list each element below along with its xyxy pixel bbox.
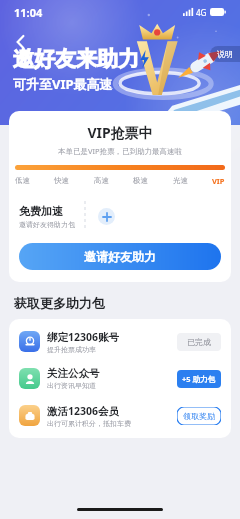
staticText: 获取更多助力包 — [14, 295, 105, 311]
button[interactable]: Back — [8, 29, 34, 55]
staticText: 已完成 — [187, 337, 211, 347]
staticText: VIP抢票中 — [9, 123, 231, 142]
staticText: +5 助力包 — [182, 374, 216, 384]
staticText: 可升至VIP最高速 — [13, 75, 113, 93]
staticText: 免费加速 — [19, 204, 63, 218]
button[interactable]: 已完成 — [177, 333, 221, 351]
staticText: 低速 — [15, 176, 30, 185]
staticText: 提升抢票成功率 — [47, 345, 96, 354]
button[interactable]: 关注公众号 — [9, 360, 231, 397]
button[interactable]: 激活12306会员 — [9, 397, 231, 434]
staticText: 光速 — [173, 176, 188, 185]
staticText: 邀请好友得助力包 — [19, 220, 75, 229]
staticText: 本单已是VIP抢票，已到助力最高速啦 — [9, 146, 231, 156]
button[interactable]: 绑定12306账号 — [9, 323, 231, 360]
staticText: 4G — [196, 7, 207, 18]
staticText: VIP — [212, 176, 225, 186]
button[interactable]: 领取奖励 — [177, 407, 221, 425]
staticText: 11:04 — [14, 5, 43, 20]
staticText: 说明 — [217, 49, 233, 59]
button[interactable]: Add boost — [98, 208, 115, 225]
staticText: 出行资讯早知道 — [47, 381, 96, 390]
staticText: 快速 — [54, 176, 69, 185]
staticText: 关注公众号 — [47, 367, 100, 380]
staticText: 高速 — [94, 176, 109, 185]
staticText: 绑定12306账号 — [47, 330, 120, 344]
staticText: 激活12306会员 — [47, 404, 120, 418]
staticText: 领取奖励 — [183, 411, 215, 421]
button[interactable]: 邀请好友助力 — [19, 243, 221, 270]
staticText: 邀好友来助力 — [13, 46, 139, 72]
staticText: 邀请好友助力 — [84, 249, 156, 264]
button[interactable]: +5 助力包 — [177, 370, 221, 388]
staticText: 出行可累计积分，抵扣车费 — [47, 419, 131, 428]
staticText: 极速 — [133, 176, 148, 185]
button[interactable]: 说明 — [210, 46, 240, 62]
